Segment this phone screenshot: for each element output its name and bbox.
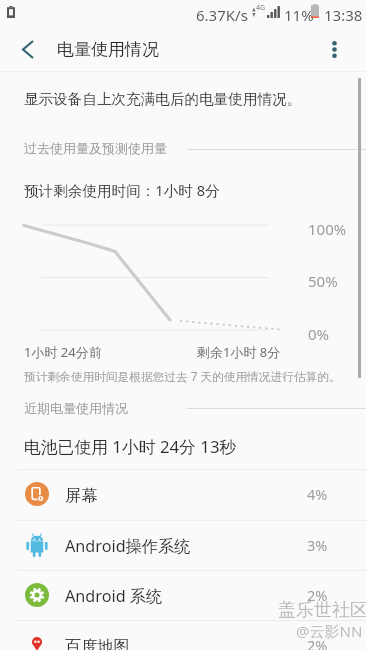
button[interactable]: Android 系统 — [0, 570, 366, 620]
button[interactable]: More options — [314, 29, 354, 69]
staticText: 剩余1小时 8分 — [197, 343, 281, 361]
staticText: 4G — [256, 3, 266, 13]
staticText: 百度地图 — [65, 636, 130, 650]
staticText: 4% — [307, 484, 328, 504]
staticText: 6.37K/s — [196, 5, 248, 25]
staticText: 11% — [284, 5, 314, 25]
staticText: 预计剩余使用时间：1小时 8分 — [24, 180, 220, 200]
staticText: 0% — [308, 324, 330, 344]
staticText: 显示设备自上次充满电后的电量使用情况。 — [24, 90, 302, 108]
staticText: 50% — [308, 271, 338, 291]
staticText: @云影NN — [296, 621, 363, 641]
staticText: Android操作系统 — [65, 535, 191, 557]
staticText: 近期电量使用情况 — [24, 400, 128, 416]
staticText: 屏幕 — [65, 485, 98, 505]
staticText: 2% — [307, 635, 328, 650]
staticText: 3% — [307, 535, 328, 555]
staticText: 电量使用情况 — [57, 39, 159, 60]
button[interactable]: 百度地图 — [0, 620, 366, 650]
button[interactable]: 屏幕 — [0, 469, 366, 519]
staticText: 2% — [307, 585, 328, 605]
staticText: 盖乐世社区 — [278, 599, 366, 622]
button[interactable]: Back — [4, 26, 51, 72]
staticText: 100% — [308, 219, 347, 239]
staticText: 过去使用量及预测使用量 — [24, 140, 167, 156]
staticText: 13:38 — [324, 5, 363, 25]
button[interactable]: Android操作系统 — [0, 520, 366, 570]
staticText: 电池已使用 1小时 24分 13秒 — [24, 435, 237, 458]
staticText: 预计剩余使用时间是根据您过去 7 天的使用情况进行估算的。 — [24, 368, 341, 384]
staticText: Android 系统 — [65, 585, 163, 607]
staticText: 1小时 24分前 — [24, 343, 102, 361]
